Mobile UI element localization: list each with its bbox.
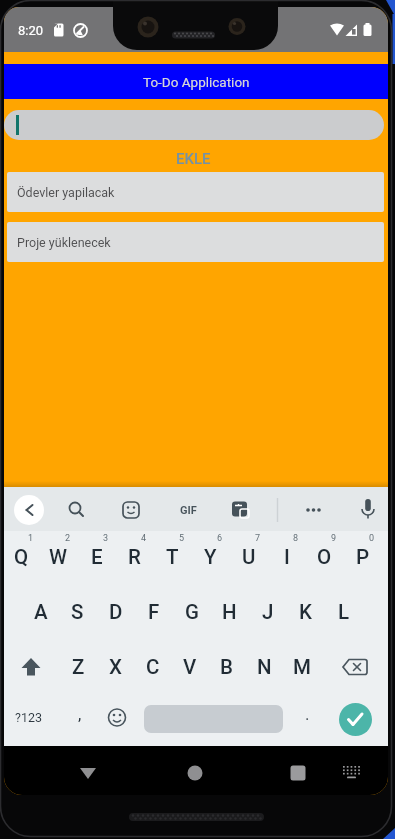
button[interactable]: , [65,696,95,732]
button[interactable] [339,703,372,736]
button[interactable]: L [325,592,362,632]
button[interactable] [14,495,44,525]
staticText: 1 [28,533,34,544]
staticText: V [183,655,197,679]
staticText: G [185,600,199,624]
button[interactable]: B [208,647,245,687]
staticText: N [257,655,272,679]
staticText: 5 [179,533,185,544]
button[interactable]: I [268,537,305,577]
staticText: Y [204,545,217,569]
button[interactable] [278,754,318,794]
staticText: 8 [293,533,299,544]
button[interactable]: X [97,647,134,687]
staticText: W [49,545,68,569]
button[interactable]: D [97,592,134,632]
button[interactable]: EKLE [143,143,243,175]
button[interactable]: Proje yüklenecek [7,222,384,262]
staticText: X [109,655,122,679]
staticText: To-Do Application [143,74,250,90]
staticText: 6 [217,533,223,544]
button[interactable] [4,110,384,140]
button[interactable]: . [292,696,322,732]
staticText: , [78,704,82,724]
staticText: L [338,600,350,624]
button[interactable]: Z [60,647,97,687]
button[interactable]: Q [4,537,40,577]
staticText: O [317,545,332,569]
button[interactable] [175,754,215,794]
button[interactable]: K [287,592,324,632]
button[interactable]: A [22,592,59,632]
staticText: H [222,600,237,624]
button[interactable]: N [246,647,283,687]
staticText: 7 [255,533,261,544]
staticText: K [299,600,312,624]
staticText: 3 [103,533,109,544]
staticText: 4 [141,533,147,544]
staticText: B [220,655,233,679]
staticText: F [148,600,160,624]
staticText: S [71,600,84,624]
button[interactable]: E [78,537,115,577]
staticText: E [91,545,103,569]
button[interactable]: V [171,647,208,687]
staticText: C [146,655,160,679]
staticText: Proje yüklenecek [17,235,111,250]
staticText: P [356,545,370,569]
staticText: M [293,655,311,679]
button[interactable]: W [40,537,77,577]
button[interactable]: G [173,592,210,632]
staticText: EKLE [176,150,211,168]
staticText: 9 [331,533,337,544]
button[interactable]: M [283,647,320,687]
button[interactable]: ?123 [4,699,53,735]
button[interactable]: P [344,537,381,577]
staticText: . [305,704,310,724]
staticText: GIF [180,504,197,517]
staticText: D [109,600,123,624]
button[interactable]: R [116,537,153,577]
button[interactable]: T [154,537,191,577]
staticText: Ödevler yapilacak [17,185,115,200]
staticText: R [128,545,141,569]
button[interactable]: U [230,537,267,577]
staticText: Q [14,545,29,569]
staticText: 0 [369,533,375,544]
staticText: 2 [65,533,71,544]
staticText: T [166,545,179,569]
button[interactable]: F [135,592,172,632]
button[interactable] [68,754,108,794]
button[interactable]: C [134,647,171,687]
staticText: I [284,545,290,569]
button[interactable]: J [249,592,286,632]
staticText: A [34,600,48,624]
button[interactable]: GIF [168,500,208,520]
staticText: U [242,545,256,569]
staticText: 8:20 [18,23,44,38]
staticText: J [262,600,274,624]
staticText: ?123 [15,710,42,725]
button[interactable]: H [211,592,248,632]
button[interactable]: Y [192,537,229,577]
button[interactable] [331,754,371,794]
button[interactable] [144,705,283,733]
button[interactable]: O [306,537,343,577]
button[interactable]: Ödevler yapilacak [7,172,384,212]
staticText: Z [72,655,85,679]
button[interactable]: S [59,592,96,632]
